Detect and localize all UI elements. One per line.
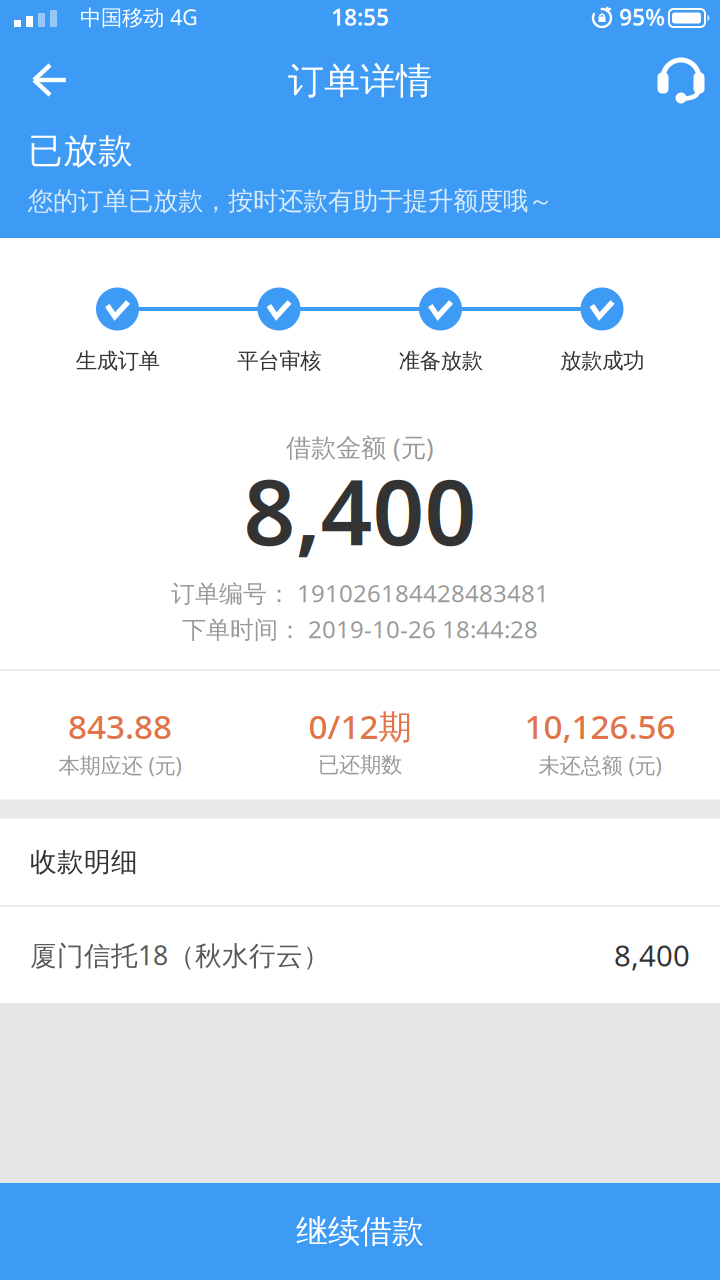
- button[interactable]: 继续借款: [0, 1183, 720, 1280]
- staticText: 收款明细: [30, 846, 138, 878]
- staticText: 0/12期: [308, 704, 411, 748]
- staticText: 厦门信托18（秋水行云）: [30, 937, 330, 973]
- button[interactable]: 厦门信托18（秋水行云）: [0, 907, 720, 1003]
- staticText: 订单详情: [288, 59, 432, 103]
- staticText: 订单编号： 191026184428483481: [171, 577, 549, 609]
- staticText: 已还期数: [318, 752, 402, 778]
- staticText: 准备放款: [399, 348, 483, 374]
- staticText: 继续借款: [296, 1212, 424, 1251]
- staticText: 8,400: [243, 450, 476, 570]
- staticText: 843.88: [68, 704, 172, 748]
- staticText: 18:55: [331, 2, 389, 32]
- button[interactable]: [639, 40, 720, 120]
- staticText: 本期应还 (元): [58, 751, 181, 779]
- staticText: 已放款: [28, 130, 133, 172]
- staticText: 平台审核: [237, 348, 321, 374]
- staticText: 95%: [619, 2, 665, 32]
- staticText: 10,126.56: [524, 704, 675, 748]
- staticText: 8,400: [614, 935, 690, 974]
- staticText: 生成订单: [76, 348, 160, 374]
- button[interactable]: [0, 40, 100, 120]
- staticText: 未还总额 (元): [538, 751, 661, 779]
- staticText: 您的订单已放款，按时还款有助于提升额度哦～: [28, 185, 553, 216]
- staticText: 下单时间： 2019-10-26 18:44:28: [182, 613, 538, 645]
- staticText: 中国移动 4G: [80, 3, 198, 31]
- staticText: 放款成功: [560, 348, 644, 374]
- staticText: 借款金额 (元): [286, 430, 434, 464]
